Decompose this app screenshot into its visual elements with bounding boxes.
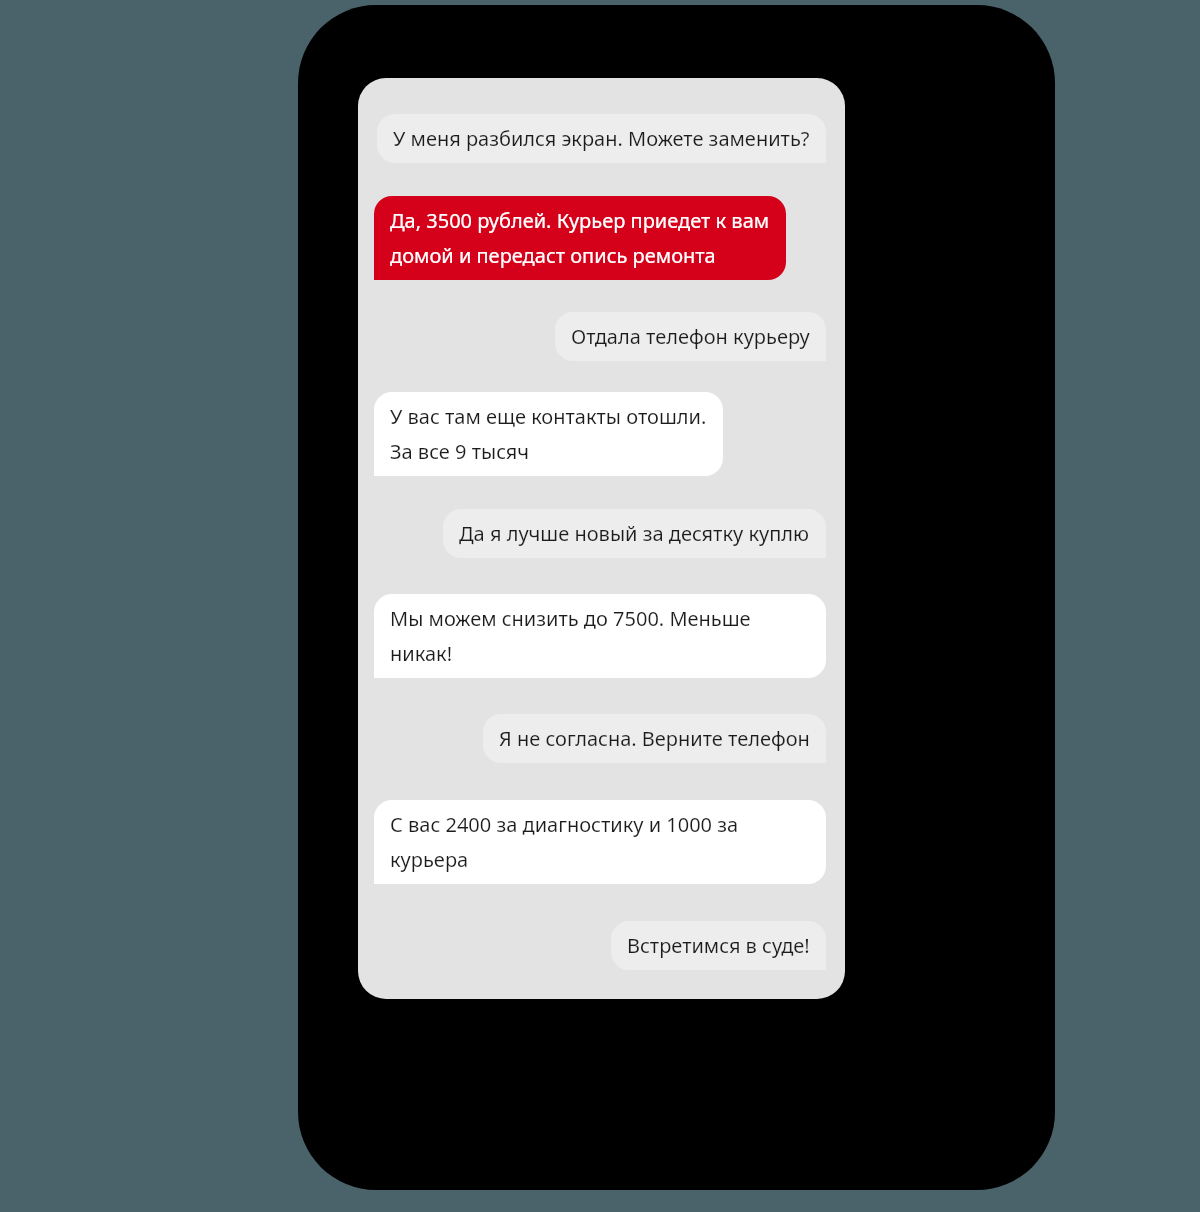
button[interactable]: Отдала телефон курьеру	[555, 312, 826, 361]
staticText: С вас 2400 за диагностику и 1000 за курь…	[390, 811, 810, 873]
staticText: Мы можем снизить до 7500. Меньше никак!	[390, 605, 810, 667]
staticText: У вас там еще контакты отошли. За все 9 …	[390, 403, 707, 465]
button[interactable]: У вас там еще контакты отошли. За все 9 …	[374, 392, 723, 476]
staticText: У меня разбился экран. Можете заменить?	[393, 125, 810, 152]
button[interactable]: Да, 3500 рублей. Курьер приедет к вам до…	[374, 196, 786, 280]
staticText: Я не согласна. Верните телефон	[499, 725, 810, 752]
button[interactable]: У меня разбился экран. Можете заменить?	[377, 114, 826, 163]
button[interactable]: Да я лучше новый за десятку куплю	[443, 509, 826, 558]
staticText: Да, 3500 рублей. Курьер приедет к вам до…	[390, 207, 770, 269]
staticText: Отдала телефон курьеру	[571, 323, 810, 350]
button[interactable]: Я не согласна. Верните телефон	[483, 714, 826, 763]
staticText: Встретимся в суде!	[627, 932, 810, 959]
staticText: Да я лучше новый за десятку куплю	[459, 520, 810, 547]
button[interactable]: Встретимся в суде!	[611, 921, 826, 970]
button[interactable]: С вас 2400 за диагностику и 1000 за курь…	[374, 800, 826, 884]
button[interactable]: Мы можем снизить до 7500. Меньше никак!	[374, 594, 826, 678]
